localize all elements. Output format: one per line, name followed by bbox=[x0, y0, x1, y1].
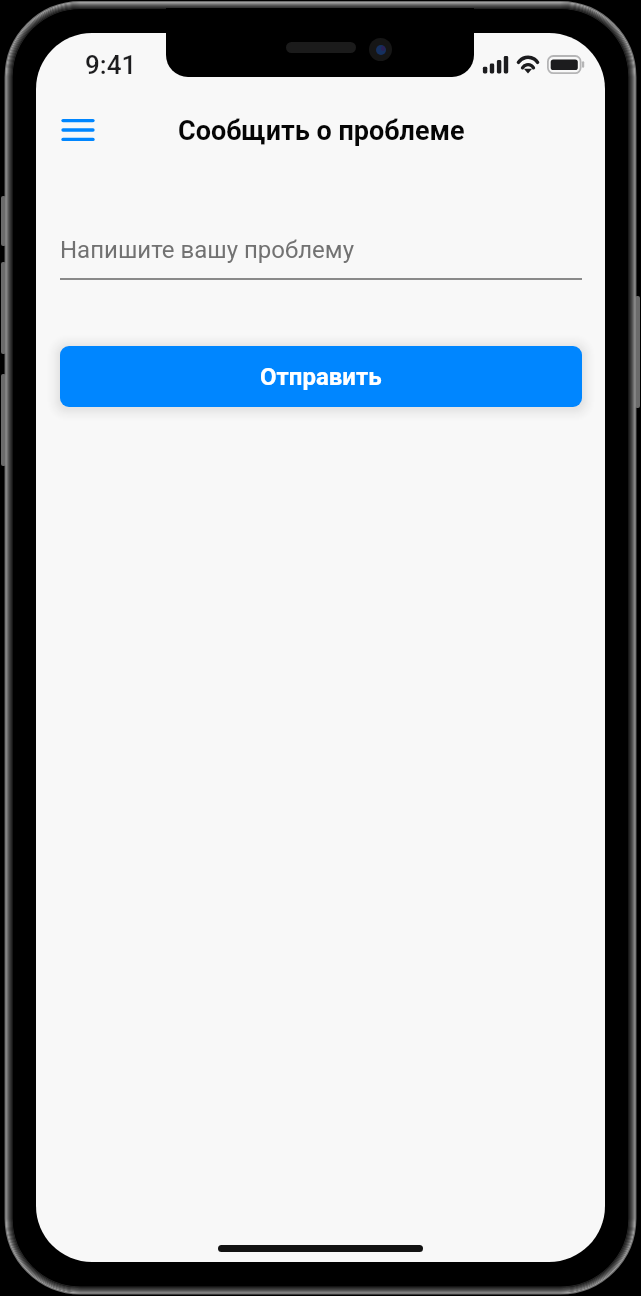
button[interactable]: Напишите вашу проблему bbox=[60, 234, 582, 280]
staticText: 9:41 bbox=[85, 50, 137, 80]
button[interactable]: Menu bbox=[54, 106, 102, 154]
staticText: Отправить bbox=[260, 363, 382, 391]
staticText: Сообщить о проблеме bbox=[178, 115, 465, 147]
button[interactable]: Отправить bbox=[60, 346, 582, 407]
staticText: Напишите вашу проблему bbox=[60, 236, 354, 264]
